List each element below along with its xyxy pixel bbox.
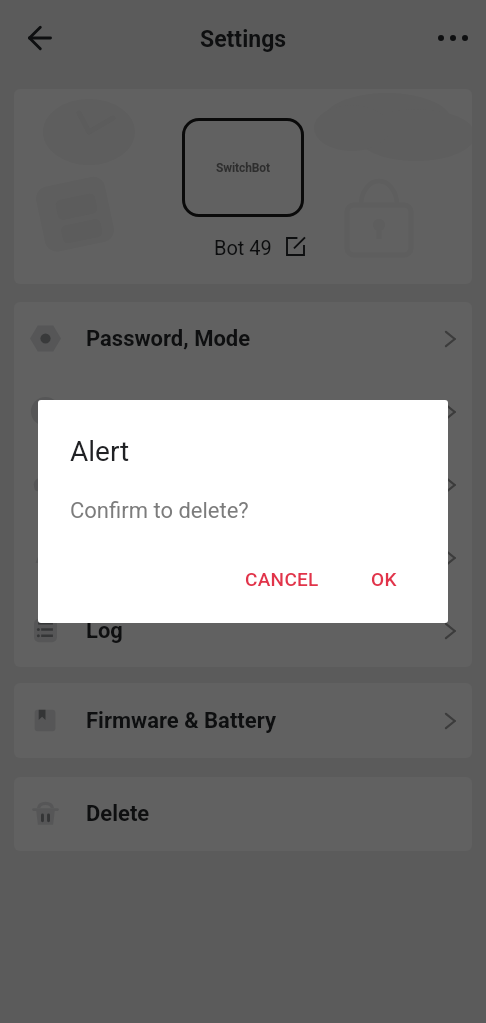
staticText: Settings [200,26,287,53]
button[interactable]: More options [426,19,478,71]
button[interactable]: CANCEL [233,558,331,600]
button[interactable]: Timer [14,375,472,448]
staticText: Delete [86,801,150,827]
staticText: Timer [86,399,145,425]
button[interactable]: OK [359,558,409,600]
staticText: SwitchBot [216,161,271,175]
staticText: Confirm to delete? [70,498,249,524]
staticText: Alert [70,435,130,468]
staticText: OK [371,568,397,590]
button[interactable]: Cloud Services [14,448,472,521]
staticText: CANCEL [245,568,319,590]
staticText: Log [86,618,123,644]
button[interactable]: Delete [14,777,472,851]
staticText: Password, Mode [86,326,251,352]
button[interactable]: Notifications [14,521,472,594]
staticText: Bot 49 [214,236,272,259]
button[interactable]: Password, Mode [14,302,472,375]
staticText: Firmware & Battery [86,708,276,734]
button[interactable]: Log [14,594,472,667]
button[interactable]: Firmware & Battery [14,683,472,758]
button[interactable]: Rename device [282,233,308,259]
button[interactable]: Back [11,19,63,71]
